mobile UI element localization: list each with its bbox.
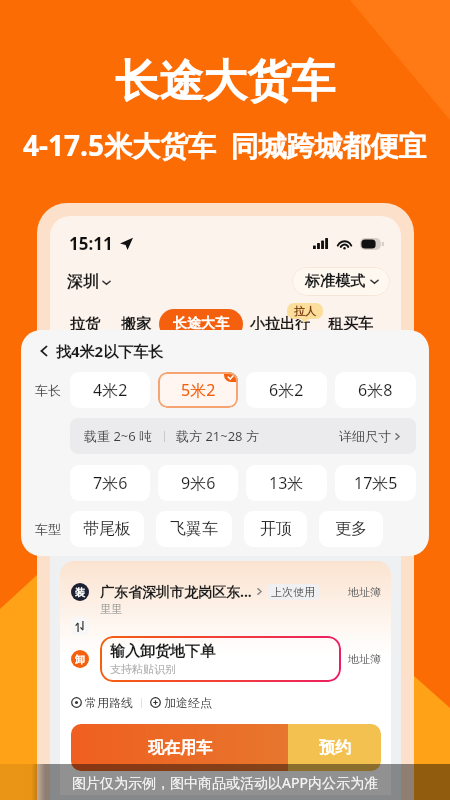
button[interactable]: 租买车 [328,315,373,339]
button[interactable]: 拉货 [70,315,100,339]
staticText: 更多 [335,519,367,539]
button[interactable]: 搬家 [121,315,151,339]
staticText: 载方 21~28 方 [176,427,259,445]
button[interactable]: 找4米2以下车长 [38,341,164,361]
staticText: 图片仅为示例，图中商品或活动以APP内公示为准 [72,773,378,792]
staticText: 6米8 [358,379,393,401]
staticText: 15:11 [69,232,113,255]
button[interactable]: 加途经点 [150,695,212,710]
staticText: 5米2 [181,379,216,401]
button[interactable]: 9米6 [158,465,238,501]
staticText: 载重 2~6 吨 [84,427,153,445]
staticText: 标准模式 [305,272,365,291]
button[interactable]: 标准模式 [292,267,390,296]
staticText: 4米2 [93,379,128,401]
button[interactable]: 输入卸货地下单 [100,636,341,682]
staticText: 输入卸货地下单 [110,642,215,661]
staticText: 长途大车 [173,315,229,333]
staticText: 上次使用 [271,585,315,599]
button[interactable]: 地址簿 [348,585,381,599]
button[interactable]: 现在用车 [71,724,288,771]
button[interactable]: 开顶 [244,511,307,547]
button[interactable]: 4米2 [70,372,150,408]
button[interactable]: 地址簿 [348,652,381,666]
button[interactable]: 更多 [319,511,383,547]
staticText: 加途经点 [164,695,212,710]
button[interactable]: 常用路线 [71,695,133,710]
button[interactable]: 17米5 [335,465,416,501]
staticText: 6米2 [269,379,304,401]
button[interactable]: 带尾板 [70,511,144,547]
staticText: 常用路线 [85,695,133,710]
button[interactable]: 深圳 [67,270,111,294]
staticText: 广东省深圳市龙岗区东... [100,582,252,601]
staticText: 17米5 [354,472,398,494]
staticText: 带尾板 [83,519,131,539]
staticText: 开顶 [260,519,292,539]
button[interactable]: 载重 2~6 吨 [70,418,416,454]
staticText: 找4米2以下车长 [56,341,164,361]
staticText: 4-17.5米大货车 同城跨城都便宜 [23,126,427,164]
staticText: 13米 [269,472,304,494]
staticText: 7米6 [93,472,128,494]
staticText: 长途大货车 [115,54,335,109]
button[interactable]: 小拉出行 [250,315,310,339]
button[interactable]: Swap addresses [71,617,89,635]
button[interactable]: 飞翼车 [156,511,232,547]
staticText: 里里 [100,602,122,616]
staticText: 卸 [75,653,85,666]
button[interactable]: 5米2 [158,372,238,408]
staticText: 预约 [319,738,351,758]
button[interactable]: 6米2 [246,372,327,408]
button[interactable]: 7米6 [70,465,150,501]
staticText: 支持粘贴识别 [110,662,176,676]
staticText: 拉人 [294,304,316,318]
staticText: 9米6 [181,472,216,494]
button[interactable]: 预约 [288,724,381,771]
staticText: 现在用车 [148,738,212,758]
staticText: 车长 [35,382,61,398]
button[interactable]: 长途大车 [159,309,243,339]
staticText: 详细尺寸 [339,428,391,444]
button[interactable]: 6米8 [335,372,416,408]
staticText: 车型 [35,521,61,537]
staticText: 飞翼车 [170,519,218,539]
staticText: 装 [75,586,85,599]
button[interactable]: 13米 [246,465,327,501]
staticText: 深圳 [67,272,99,292]
